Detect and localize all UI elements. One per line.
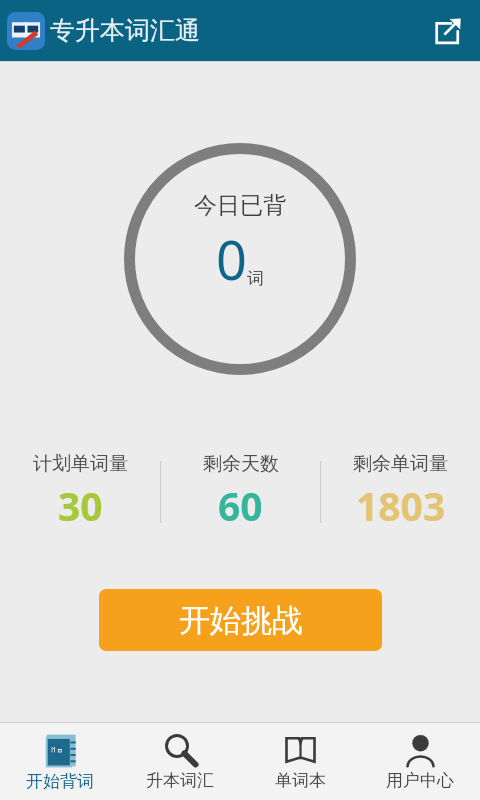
staticText: 剩余天数 — [203, 452, 279, 476]
button[interactable]: 剩余单词量 — [321, 449, 480, 535]
staticText: 计划单词量 — [33, 452, 128, 476]
button[interactable]: 升本词汇 — [120, 723, 240, 800]
staticText: 30 — [58, 479, 103, 532]
button[interactable]: 单词本 — [240, 723, 360, 800]
staticText: 1803 — [356, 479, 446, 532]
staticText: 60 — [218, 479, 263, 532]
button[interactable]: 剩余天数 — [161, 449, 320, 535]
staticText: 今日已背 — [194, 191, 286, 220]
staticText: 剩余单词量 — [353, 452, 448, 476]
staticText: 0 — [216, 222, 247, 296]
staticText: 用户中心 — [386, 770, 454, 791]
button[interactable]: 开始背词 — [0, 723, 120, 800]
button[interactable]: 开始挑战 — [99, 589, 382, 651]
staticText: 升本词汇 — [146, 770, 214, 791]
staticText: 单词本 — [275, 770, 326, 791]
button[interactable]: 用户中心 — [360, 723, 480, 800]
staticText: 开始背词 — [26, 771, 94, 792]
staticText: 词 — [247, 268, 264, 289]
button[interactable]: 计划单词量 — [0, 449, 160, 535]
staticText: 专升本词汇通 — [50, 15, 200, 46]
staticText: 开始挑战 — [179, 601, 303, 640]
button[interactable]: Share — [424, 8, 470, 54]
